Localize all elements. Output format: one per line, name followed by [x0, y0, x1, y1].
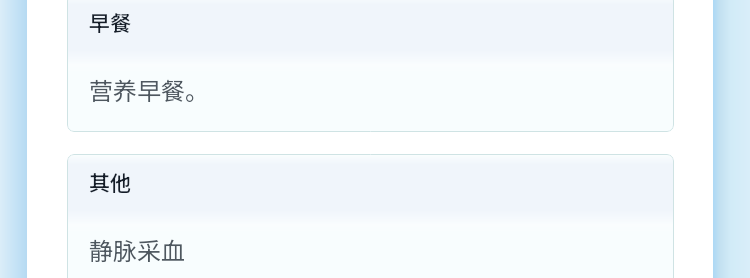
staticText: 其他 [89, 167, 131, 197]
staticText: 静脉采血 [89, 232, 185, 267]
staticText: 营养早餐。 [89, 72, 209, 107]
button[interactable]: 早餐 [67, 0, 674, 132]
button[interactable]: 其他 [67, 154, 674, 278]
staticText: 早餐 [89, 7, 131, 37]
